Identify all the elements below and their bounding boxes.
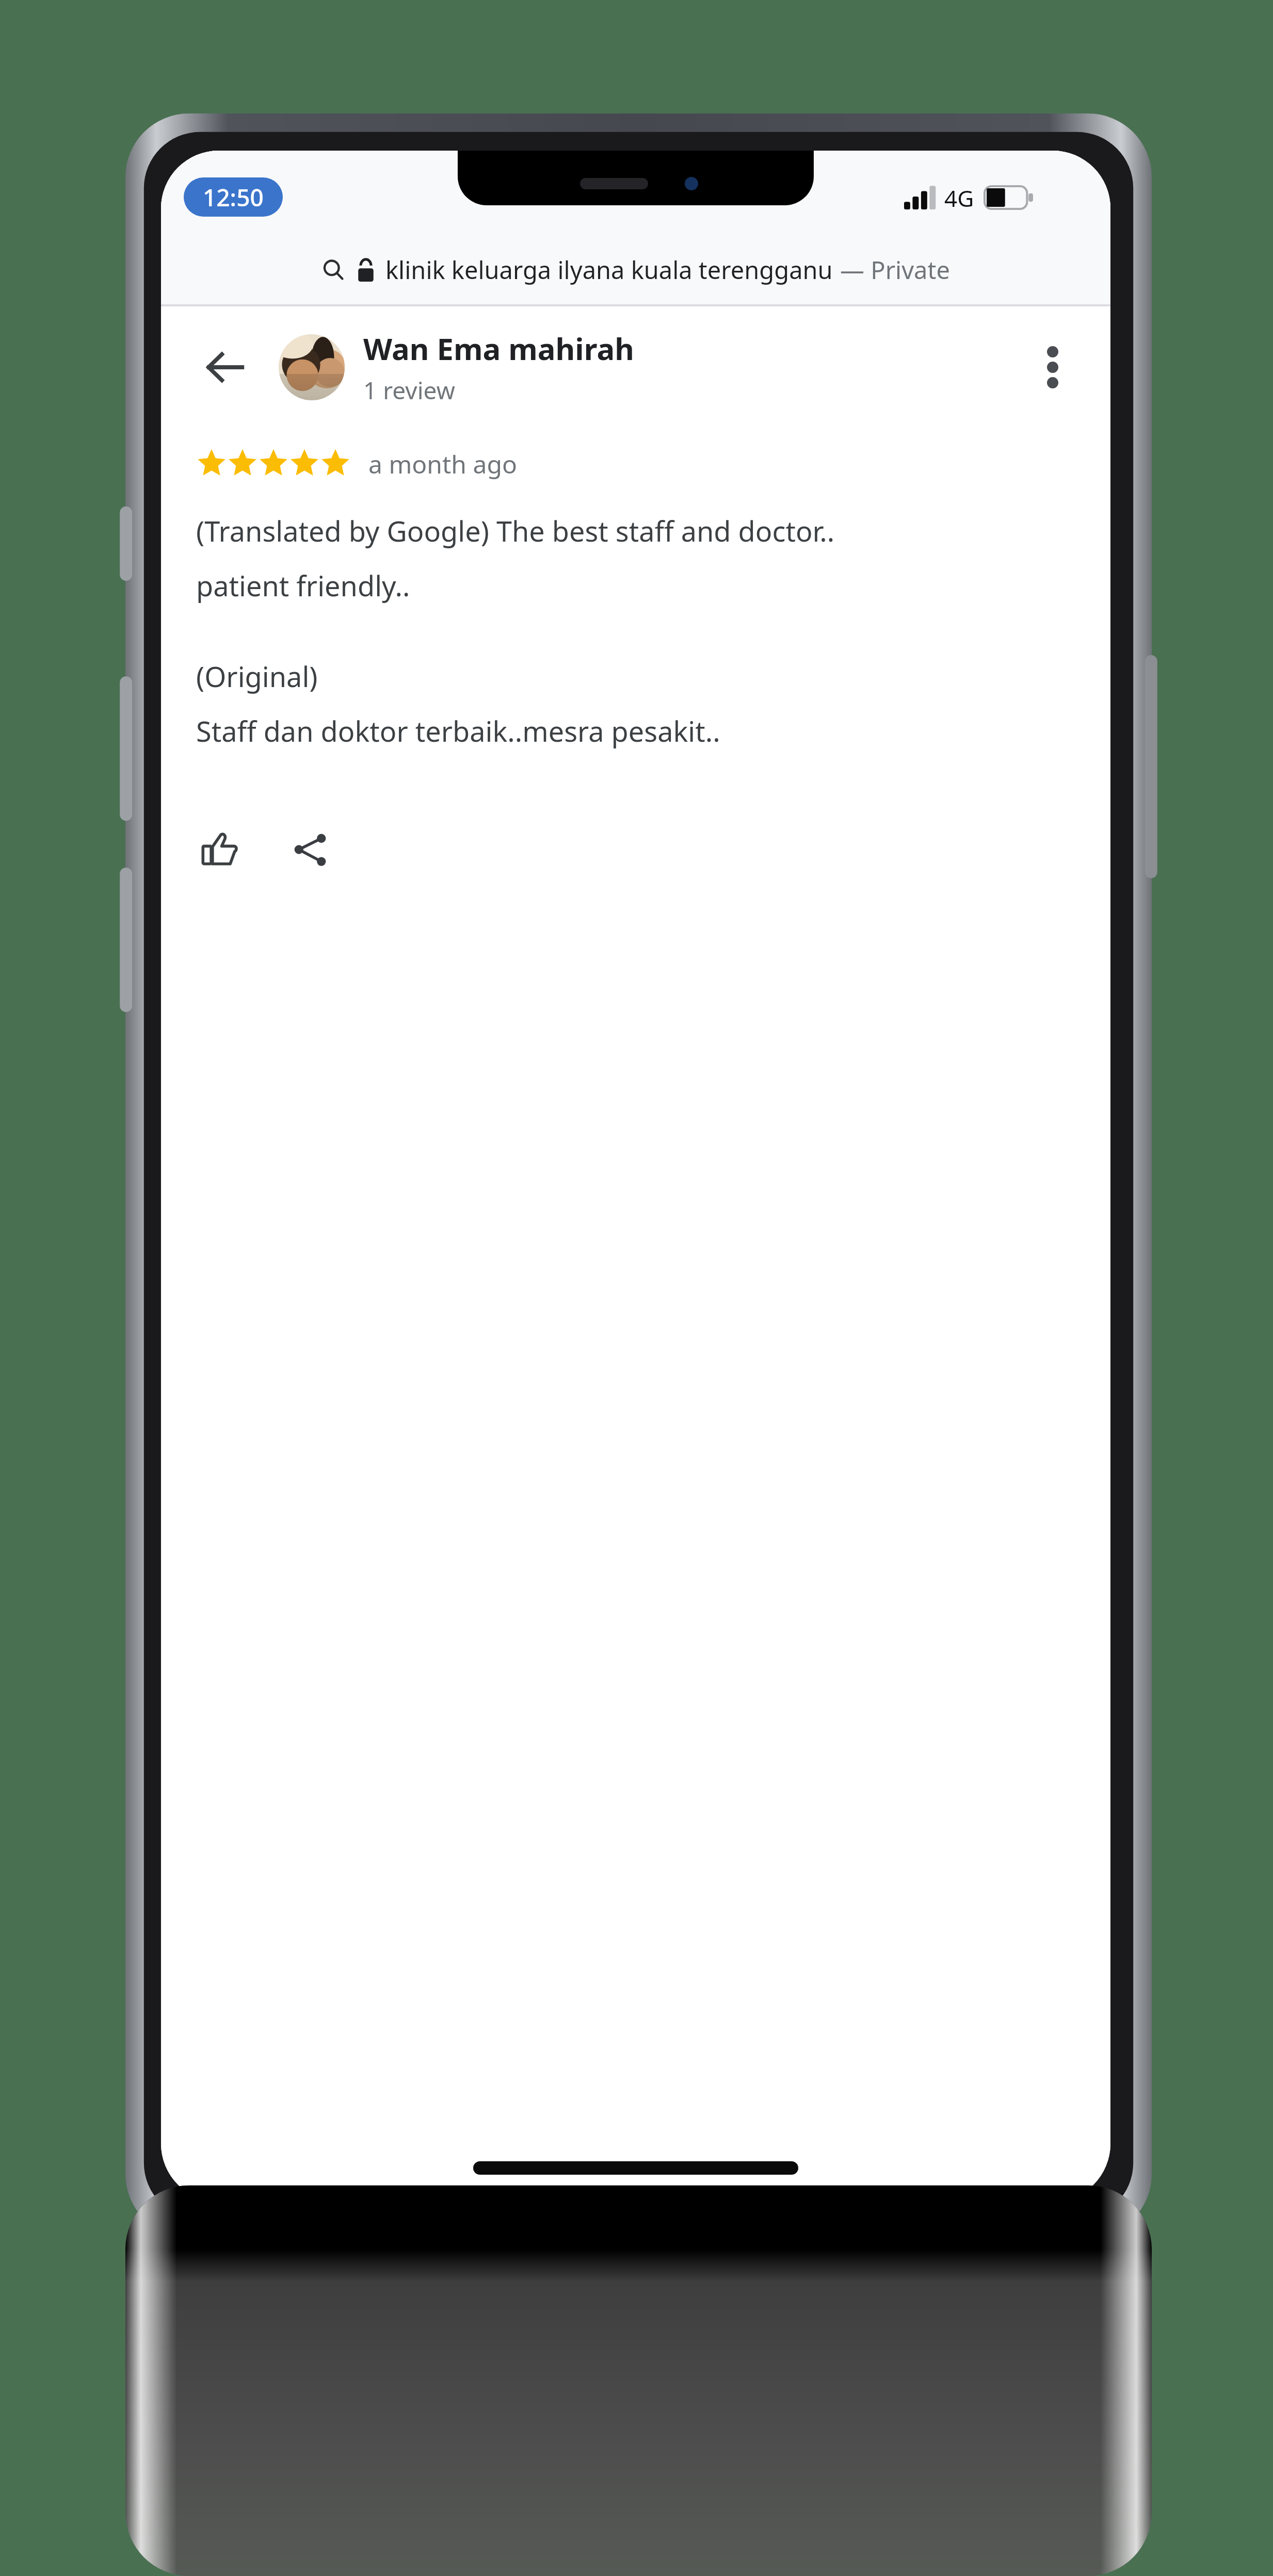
staticText: 1 review [363,374,455,406]
staticText: klinik keluarga ilyana kuala terengganu [385,253,833,286]
button[interactable]: Profile photo [279,334,345,400]
staticText: — Private [840,253,950,286]
button[interactable]: Like [186,816,253,883]
button[interactable]: More options [1022,336,1084,398]
staticText: a month ago [368,447,517,481]
button[interactable]: Wan Ema mahirah [363,328,634,406]
button[interactable]: klinik keluarga ilyana kuala terengganu [161,241,1110,298]
button[interactable]: Share [277,816,344,883]
staticText: 12:50 [203,181,264,214]
staticText: (Original) Staff dan doktor terbaik..mes… [196,657,720,750]
staticText: Wan Ema mahirah [363,328,634,369]
button[interactable]: Back [193,335,257,399]
staticText: 4G [944,183,974,213]
staticText: (Translated by Google) The best staff an… [196,512,835,605]
